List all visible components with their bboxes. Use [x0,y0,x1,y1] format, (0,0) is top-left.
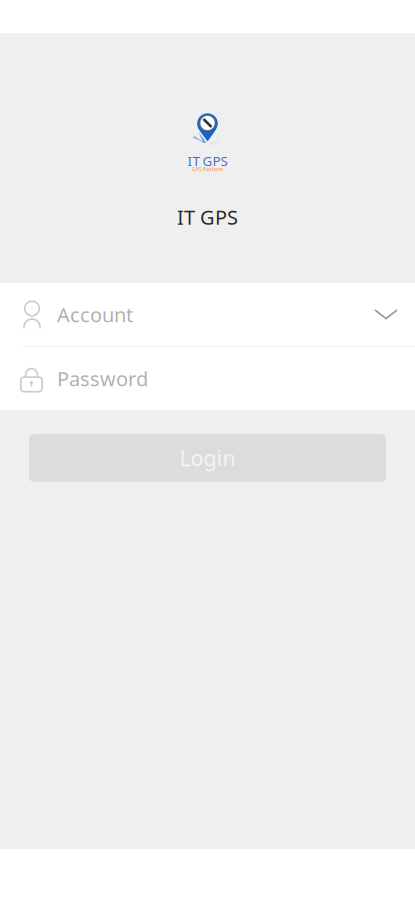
staticText: Account [57,301,133,328]
staticText: Password [57,365,148,392]
button[interactable]: Account [0,283,415,346]
button[interactable]: Show saved accounts [357,283,415,346]
staticText: GPS Platform [191,166,223,173]
button[interactable]: Password [0,347,415,410]
staticText: IT GPS [187,152,227,170]
staticText: Login [179,444,235,472]
staticText: IT GPS [177,204,238,230]
